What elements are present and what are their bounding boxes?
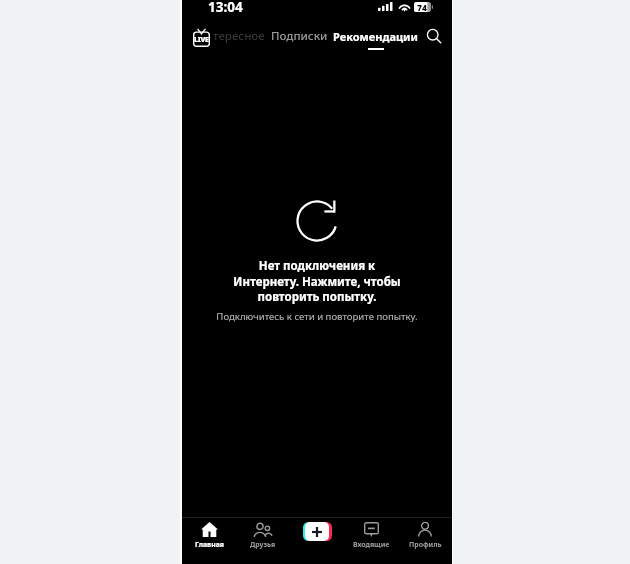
staticText: Нет подключения к Интернету. Нажмите, чт… <box>233 258 401 304</box>
button[interactable]: Создать <box>302 522 332 541</box>
button[interactable]: Главная <box>182 521 236 549</box>
staticText: 13:04 <box>208 0 243 16</box>
button[interactable]: Профиль <box>398 521 452 549</box>
staticText: LIVE <box>194 35 209 45</box>
staticText: 74 <box>417 2 427 12</box>
staticText: Подключитесь к сети и повторите попытку. <box>216 310 418 323</box>
staticText: Входящие <box>353 540 390 549</box>
button[interactable]: Подписки <box>271 28 328 50</box>
staticText: Профиль <box>409 540 442 549</box>
staticText: Главная <box>195 540 224 549</box>
button[interactable]: LIVE <box>190 27 212 49</box>
staticText: Друзья <box>250 540 276 549</box>
button[interactable]: Интересное <box>197 28 265 50</box>
button[interactable]: Нет подключения к Интернету. Нажмите, чт… <box>216 200 418 323</box>
button[interactable]: Рекомендации <box>333 29 418 50</box>
staticText: Рекомендации <box>333 29 418 44</box>
button[interactable]: Входящие <box>344 521 398 549</box>
button[interactable]: Друзья <box>236 521 290 549</box>
staticText: Подписки <box>271 28 328 44</box>
staticText: Интересное <box>197 28 265 44</box>
button[interactable]: Поиск <box>423 25 445 47</box>
